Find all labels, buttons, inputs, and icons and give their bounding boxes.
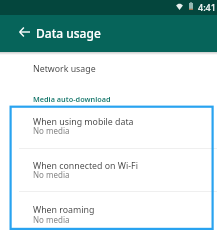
staticText: When roaming	[33, 204, 95, 216]
staticText: When using mobile data	[33, 116, 134, 128]
staticText: Data usage	[36, 25, 101, 41]
staticText: Network usage	[33, 63, 96, 75]
button[interactable]: When roaming	[0, 191, 217, 232]
staticText: 4:41	[198, 1, 216, 13]
button[interactable]: Network usage	[0, 55, 217, 80]
button[interactable]: When connected on Wi-Fi	[0, 148, 217, 191]
staticText: When connected on Wi-Fi	[33, 160, 138, 172]
staticText: No media	[33, 169, 70, 180]
button[interactable]: Back	[7, 15, 42, 52]
staticText: No media	[33, 214, 70, 225]
staticText: Media auto-download	[33, 94, 111, 104]
staticText: No media	[33, 125, 70, 136]
button[interactable]: When using mobile data	[0, 105, 217, 148]
